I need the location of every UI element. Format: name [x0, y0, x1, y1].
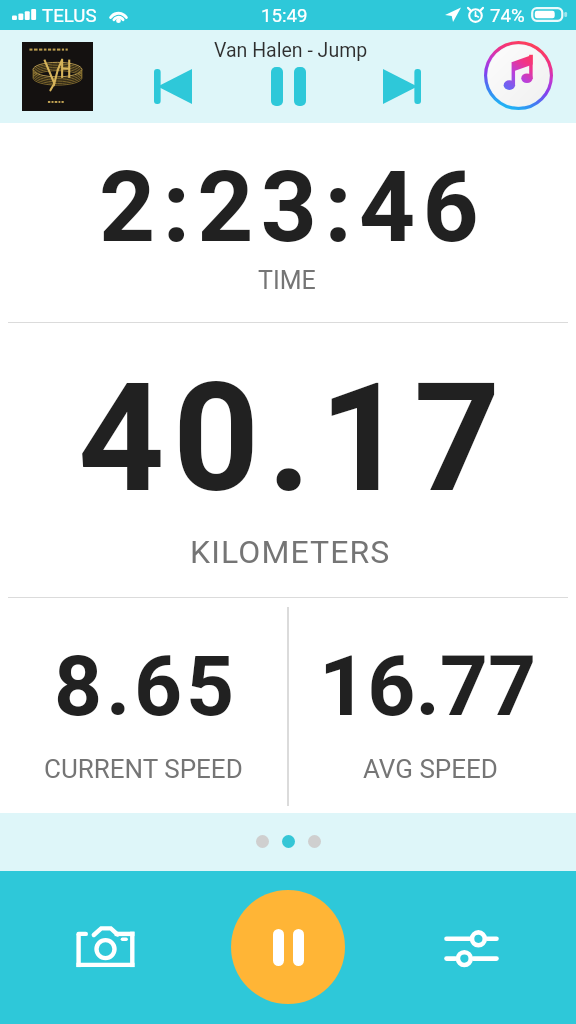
- staticText: 16.77: [319, 637, 537, 735]
- staticText: AVG SPEED: [363, 754, 498, 784]
- button[interactable]: Open iTunes: [484, 41, 553, 110]
- button[interactable]: Settings: [427, 911, 515, 987]
- staticText: 15:49: [261, 5, 308, 27]
- staticText: CURRENT SPEED: [44, 754, 243, 784]
- staticText: 2:23:46: [99, 150, 486, 265]
- button[interactable]: Pause music: [258, 61, 318, 111]
- staticText: Van Halen - Jump: [214, 39, 368, 62]
- button[interactable]: Previous track: [142, 61, 204, 111]
- button[interactable]: Next track: [371, 61, 433, 111]
- staticText: 8.65: [54, 637, 238, 735]
- button[interactable]: Camera: [62, 911, 150, 987]
- staticText: TELUS: [42, 5, 97, 27]
- staticText: 40.17: [78, 350, 509, 527]
- button[interactable]: Pause workout: [231, 890, 345, 1004]
- staticText: KILOMETERS: [190, 533, 391, 571]
- staticText: 74%: [490, 5, 525, 27]
- staticText: TIME: [258, 266, 316, 295]
